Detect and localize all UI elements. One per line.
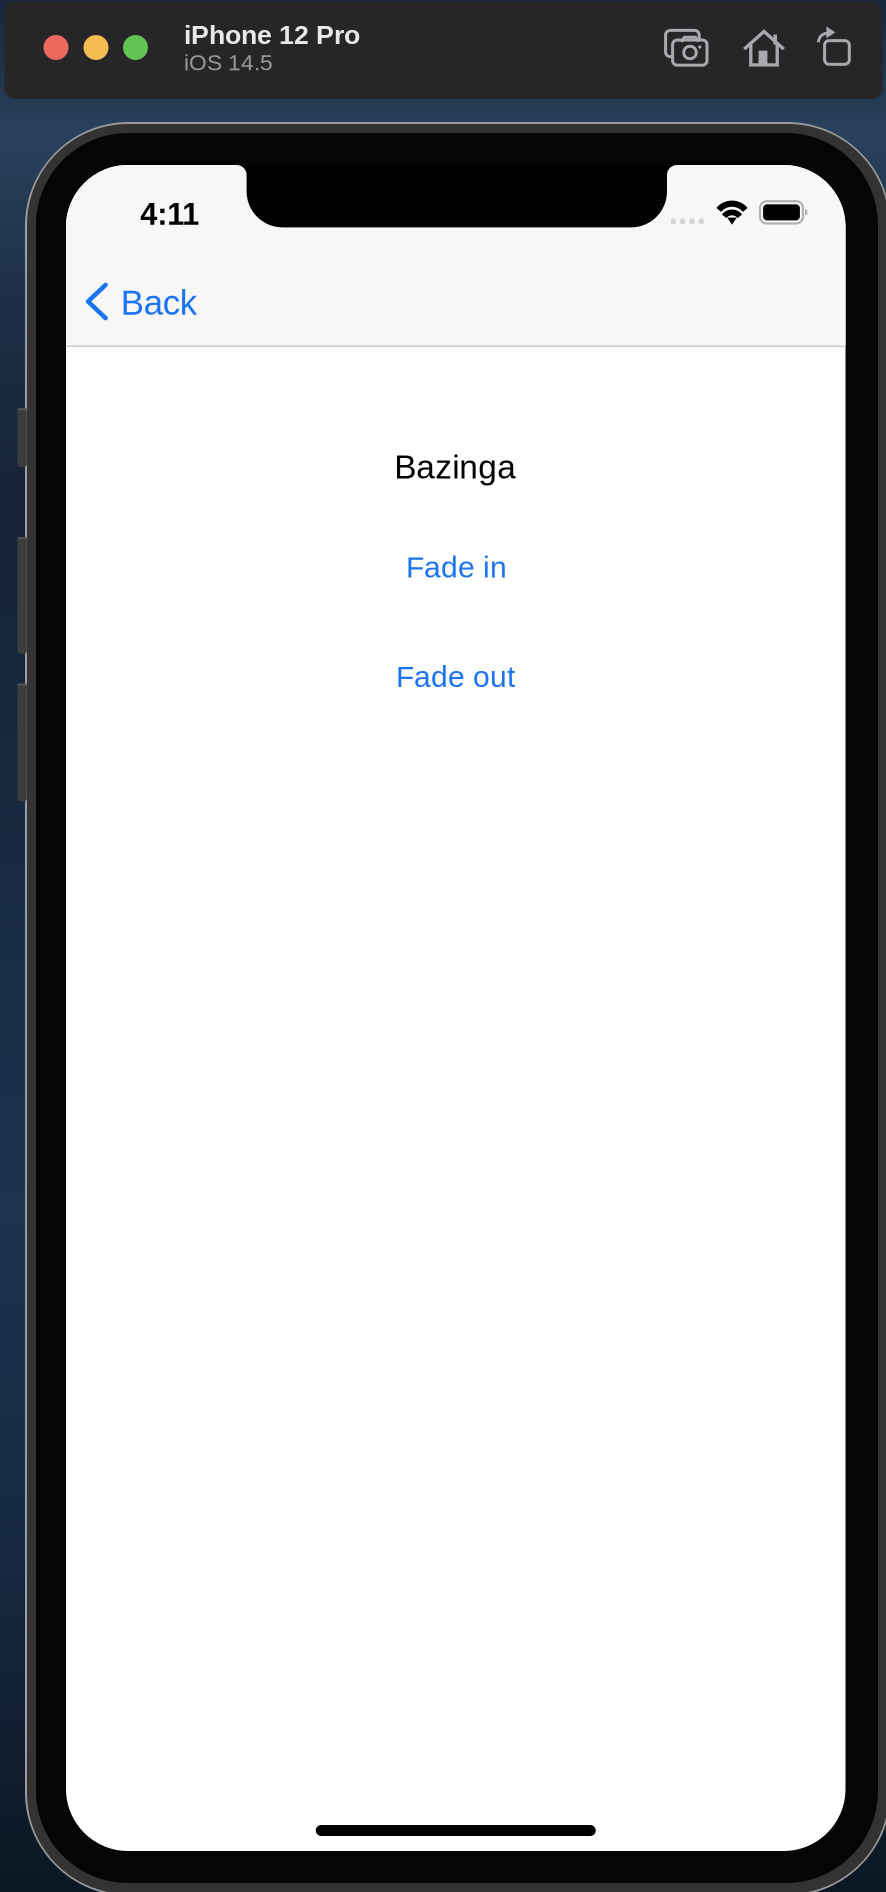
button[interactable]: Minimize — [83, 35, 108, 60]
button[interactable]: Zoom — [123, 35, 148, 60]
button[interactable]: Fade out — [366, 654, 546, 700]
staticText: Bazinga — [394, 448, 516, 486]
staticText: Fade in — [406, 550, 507, 584]
staticText: iOS 14.5 — [184, 50, 273, 75]
button[interactable]: Rotate — [808, 21, 860, 73]
button[interactable]: Close — [43, 35, 68, 60]
button[interactable]: Home — [740, 26, 792, 78]
staticText: Fade out — [396, 660, 515, 693]
button[interactable]: Back — [85, 257, 235, 345]
button[interactable]: Fade in — [366, 544, 546, 590]
button[interactable]: Screenshot — [661, 25, 713, 77]
staticText: 4:11 — [140, 197, 199, 231]
staticText: iPhone 12 Pro — [184, 20, 360, 50]
staticText: Back — [121, 283, 197, 322]
